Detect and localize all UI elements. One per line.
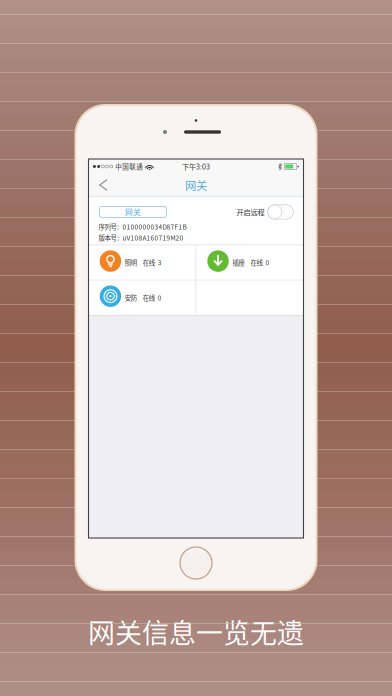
staticText: 下午3:03 xyxy=(182,161,210,172)
staticText: 网关信息一览无遗 xyxy=(88,612,304,651)
button[interactable]: 开启远程 xyxy=(267,205,293,219)
staticText: 照明 在线 3 xyxy=(125,258,162,267)
staticText: 序列号：0100000034D87F1B xyxy=(98,222,186,231)
staticText: 开启远程 xyxy=(236,207,264,217)
button[interactable]: 照明 在线 3 xyxy=(89,245,196,280)
staticText: 版本号：uV108A160719M20 xyxy=(98,233,183,242)
staticText: 网关 xyxy=(125,206,141,218)
staticText: 插座 在线 0 xyxy=(232,258,269,267)
button[interactable]: 插座 在线 0 xyxy=(196,245,303,280)
staticText: 中国联通 xyxy=(115,162,143,171)
button[interactable]: 返回 xyxy=(88,175,117,195)
button[interactable]: 安防 在线 0 xyxy=(89,280,196,315)
staticText: 网关 xyxy=(185,177,207,193)
staticText: 安防 在线 0 xyxy=(125,293,162,302)
button[interactable]: 网关 xyxy=(99,206,166,217)
